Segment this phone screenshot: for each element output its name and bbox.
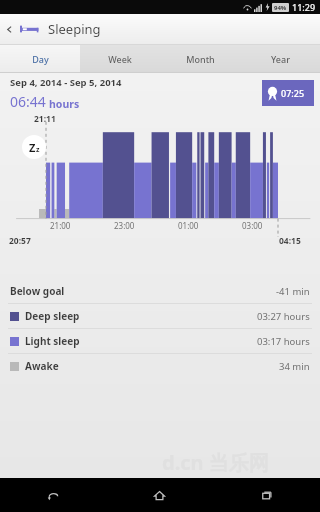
staticText: 04:15 [279, 235, 301, 247]
staticText: Sleeping [48, 20, 101, 38]
staticText: 34 min [279, 360, 310, 373]
staticText: hours [49, 97, 80, 111]
staticText: -41 min [276, 285, 310, 298]
button[interactable]: Home [106, 478, 213, 512]
staticText: Sep 4, 2014 - Sep 5, 2014 [10, 76, 122, 89]
button[interactable]: Sleep start [22, 135, 46, 159]
staticText: 07:25 [281, 87, 305, 99]
staticText: 21:00 [50, 220, 71, 231]
button[interactable]: Back [0, 14, 320, 44]
staticText: Z [29, 140, 36, 155]
staticText: 03:00 [242, 220, 263, 231]
staticText: Deep sleep [25, 309, 80, 323]
staticText: 11:29 [292, 1, 316, 13]
button[interactable]: Back [0, 14, 18, 44]
staticText: Awake [25, 359, 59, 373]
staticText: 20:57 [9, 235, 31, 247]
staticText: Week [108, 53, 132, 65]
staticText: Below goal [10, 284, 65, 298]
staticText: 03:27 hours [257, 310, 310, 323]
button[interactable]: 07:25 [262, 80, 314, 106]
staticText: 01:00 [178, 220, 199, 231]
staticText: Light sleep [25, 334, 80, 348]
button[interactable]: Day [0, 45, 80, 72]
staticText: Year [271, 53, 290, 65]
staticText: Day [32, 53, 49, 65]
staticText: 21:11 [34, 113, 56, 125]
button[interactable]: Awake [0, 354, 320, 378]
button[interactable]: Light sleep [0, 329, 320, 353]
staticText: 94% [274, 4, 287, 12]
button[interactable]: Back [0, 478, 106, 512]
staticText: z [36, 145, 40, 155]
button[interactable]: Year [240, 45, 320, 72]
button[interactable]: Recent apps [213, 478, 320, 512]
staticText: 03:17 hours [257, 335, 310, 348]
staticText: 06:44 [10, 92, 46, 111]
button[interactable]: Month [160, 45, 240, 72]
staticText: Month [186, 53, 215, 65]
button[interactable]: Deep sleep [0, 304, 320, 328]
button[interactable]: Week [80, 45, 160, 72]
button[interactable]: Below goal [0, 279, 320, 303]
staticText: d.cn 当乐网 [162, 449, 269, 476]
staticText: 23:00 [114, 220, 135, 231]
